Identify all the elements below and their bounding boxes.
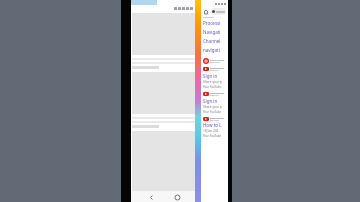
button[interactable]: navigati: [201, 45, 228, 54]
staticText: 18 Jan 202: [203, 129, 219, 133]
button[interactable]: [201, 64, 228, 71]
button[interactable]: Processi: [201, 18, 228, 27]
staticText: Share your p: [203, 105, 223, 109]
button[interactable]: Navigati: [201, 27, 228, 36]
button[interactable]: Channel: [201, 36, 228, 45]
button[interactable]: Sign in: [201, 96, 228, 114]
staticText: How to L: [203, 122, 222, 128]
staticText: Channel: [203, 38, 221, 44]
button[interactable]: Sign in: [201, 71, 228, 89]
staticText: Your YouTube: [203, 110, 222, 114]
staticText: navigati: [203, 47, 220, 53]
button[interactable]: [211, 8, 226, 15]
button[interactable]: [201, 89, 228, 96]
staticText: Processi: [203, 20, 221, 26]
staticText: Share your p: [203, 80, 223, 84]
staticText: Sign in: [203, 73, 218, 79]
staticText: Sign in: [203, 98, 218, 104]
staticText: Navigati: [203, 29, 221, 35]
button[interactable]: [201, 114, 228, 121]
button[interactable]: [201, 56, 228, 64]
button[interactable]: Home: [203, 9, 209, 15]
button[interactable]: Back: [146, 192, 156, 202]
staticText: Your YouTube: [203, 85, 222, 89]
button[interactable]: Home: [172, 192, 182, 202]
staticText: Your YouTube: [203, 134, 222, 138]
